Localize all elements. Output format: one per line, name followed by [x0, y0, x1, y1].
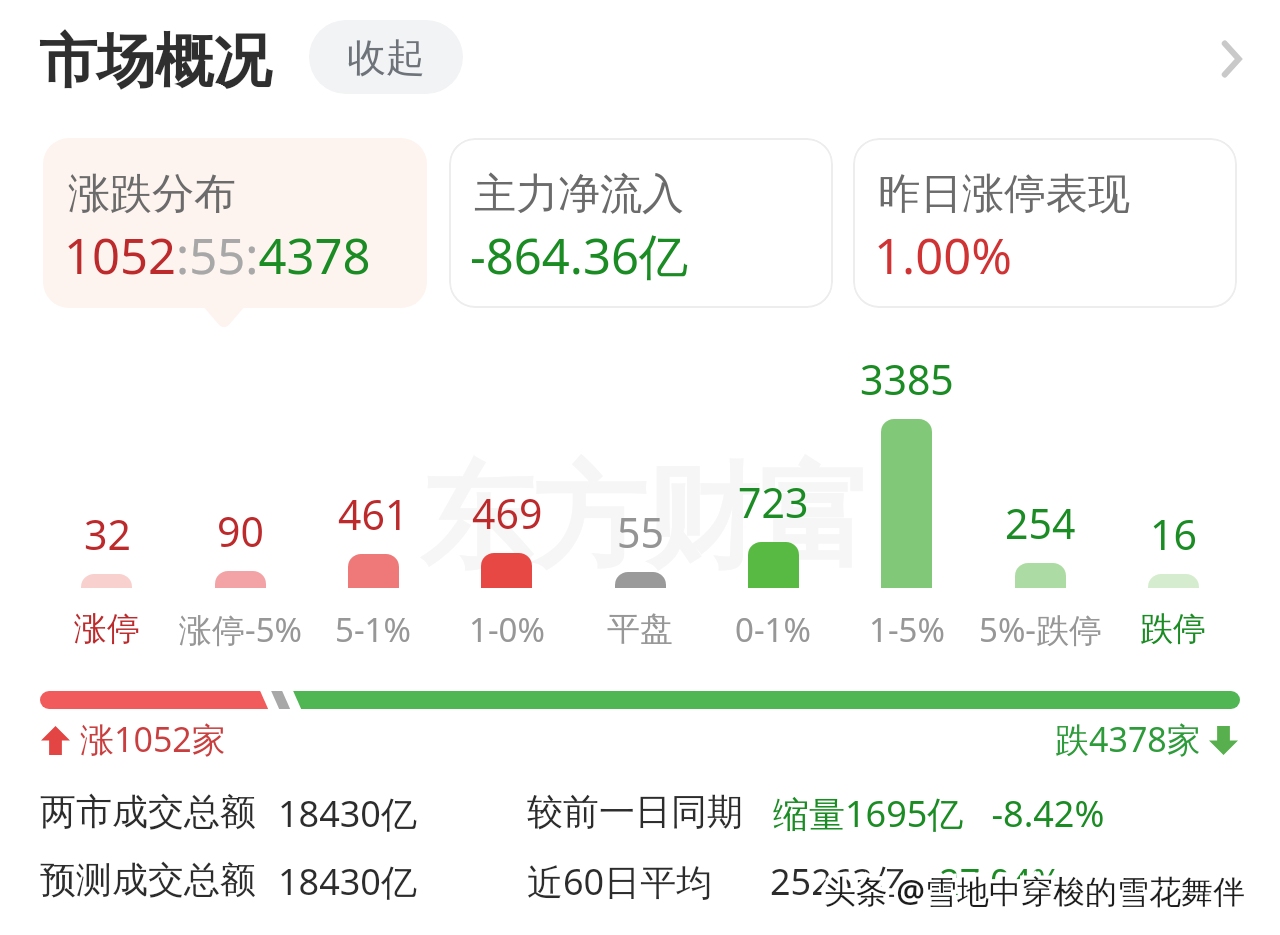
button[interactable] — [30, 782, 490, 836]
staticText: 469 — [472, 485, 543, 535]
staticText: 收起 — [347, 33, 425, 82]
staticText: 涨停 — [74, 608, 140, 650]
button[interactable] — [1107, 350, 1240, 652]
button[interactable] — [573, 350, 706, 652]
staticText: 1.00% — [874, 222, 1012, 289]
button[interactable] — [40, 350, 173, 652]
staticText: 16 — [1150, 506, 1197, 556]
staticText: 昨日涨停表现 — [878, 168, 1130, 221]
staticText: 461 — [338, 486, 409, 536]
staticText: 平盘 — [607, 608, 673, 650]
staticText: 1-0% — [469, 607, 545, 652]
staticText: 两市成交总额 — [40, 789, 256, 834]
button[interactable] — [30, 850, 490, 904]
staticText: 5-1% — [335, 607, 411, 652]
staticText: 5%-跌停 — [979, 607, 1102, 652]
staticText: 主力净流入 — [474, 168, 684, 221]
button[interactable] — [707, 350, 840, 652]
staticText: 25263亿 -27.04% — [770, 857, 1062, 906]
staticText: 跌4378家 — [1055, 716, 1201, 762]
staticText: 头条 @雪地中穿梭的雪花舞伴 — [824, 869, 1246, 913]
staticText: 涨1052家 — [80, 716, 226, 762]
staticText: 缩量1695亿 -8.42% — [773, 789, 1105, 838]
staticText: 18430亿 — [278, 857, 417, 906]
button[interactable] — [173, 350, 306, 652]
staticText: 90 — [217, 503, 264, 553]
staticText: 预测成交总额 — [40, 857, 256, 902]
staticText: 18430亿 — [278, 789, 417, 838]
staticText: 涨停-5% — [179, 607, 302, 652]
button[interactable]: 收起 — [309, 20, 463, 94]
button[interactable] — [973, 350, 1106, 652]
staticText: 市场概况 — [39, 25, 271, 98]
button[interactable] — [440, 350, 573, 652]
staticText: 1-5% — [869, 607, 945, 652]
button[interactable]: Expand market overview — [1196, 24, 1266, 94]
staticText: -864.36亿 — [470, 222, 689, 289]
staticText: 32 — [84, 506, 131, 556]
staticText: 0-1% — [735, 607, 811, 652]
staticText: 较前一日同期 — [527, 789, 743, 834]
button[interactable] — [307, 350, 440, 652]
staticText: 东方财富 — [420, 447, 872, 589]
staticText: 近60日平均 — [527, 857, 713, 906]
staticText: 723 — [738, 474, 809, 524]
staticText: 254 — [1005, 495, 1076, 545]
staticText: 跌停 — [1140, 608, 1206, 650]
staticText: 1052:55:4378 — [64, 222, 371, 289]
button[interactable] — [510, 850, 1120, 904]
staticText: 55 — [617, 504, 664, 554]
button[interactable] — [853, 138, 1237, 308]
staticText: 头条 @雪地中穿梭的雪花舞伴 — [824, 869, 1246, 913]
staticText: 3385 — [860, 351, 954, 401]
button[interactable] — [449, 138, 833, 308]
button[interactable] — [840, 350, 973, 652]
button[interactable] — [43, 138, 427, 308]
button[interactable] — [510, 782, 1120, 836]
staticText: 涨跌分布 — [68, 168, 236, 221]
